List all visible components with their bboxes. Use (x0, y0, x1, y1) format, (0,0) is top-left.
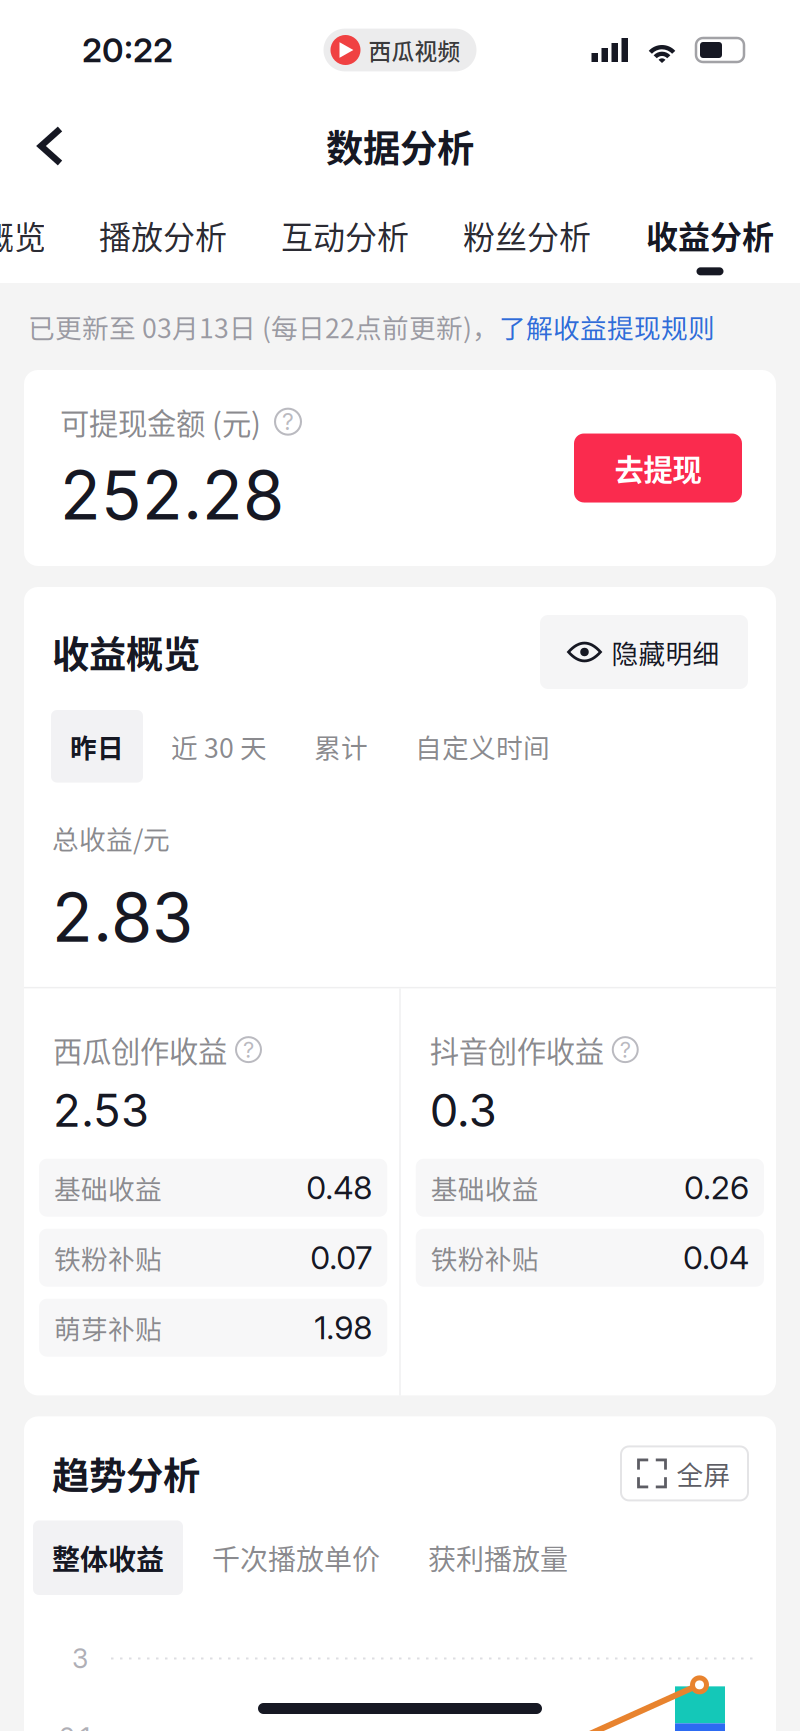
staticText: 基础收益 (54, 1168, 162, 1207)
staticText: 总收益/元 (52, 819, 170, 857)
staticText: 3 (72, 1642, 88, 1675)
staticText: 近 30 天 (171, 727, 267, 766)
staticText: 数据分析 (326, 119, 474, 173)
staticText: 0.3 (430, 1083, 497, 1138)
staticText: 0.04 (683, 1238, 749, 1277)
staticText: ? (620, 1036, 631, 1063)
button[interactable]: 播放分析 (97, 192, 229, 275)
staticText: 252.28 (60, 455, 284, 536)
staticText: ? (243, 1036, 254, 1063)
button[interactable]: 粉丝分析 (461, 192, 593, 275)
staticText: 概览 (0, 212, 46, 258)
button[interactable]: 去提现 (574, 433, 742, 502)
staticText: 可提现金额 (元) (60, 400, 261, 443)
staticText: 获利播放量 (428, 1537, 568, 1578)
button[interactable]: 近 30 天 (152, 710, 286, 783)
staticText: 去提现 (614, 447, 701, 489)
staticText: 2.83 (52, 877, 193, 958)
staticText: 铁粉补贴 (431, 1238, 539, 1277)
staticText: 萌芽补贴 (54, 1308, 162, 1347)
button[interactable]: 整体收益 (33, 1520, 183, 1595)
button[interactable]: 全屏 (621, 1446, 748, 1500)
button[interactable]: 互动分析 (279, 192, 411, 275)
staticText: 千次播放单价 (212, 1537, 380, 1578)
staticText: 粉丝分析 (463, 212, 591, 258)
button[interactable]: Back (0, 105, 94, 187)
staticText: 基础收益 (431, 1168, 539, 1207)
staticText: 西瓜视频 (368, 34, 460, 66)
button[interactable]: 获利播放量 (409, 1520, 587, 1595)
staticText: 已更新至 03月13日 (每日22点前更新)， (28, 307, 499, 346)
staticText: 抖音创作收益 (430, 1028, 604, 1071)
staticText: 20:22 (82, 30, 173, 70)
staticText: 累计 (314, 727, 368, 766)
button[interactable]: 千次播放单价 (193, 1520, 399, 1595)
button[interactable]: 隐藏明细 (540, 615, 748, 689)
staticText: 收益分析 (646, 212, 774, 258)
staticText: ? (282, 408, 294, 435)
staticText: 全屏 (676, 1454, 730, 1493)
staticText: 自定义时间 (415, 727, 550, 766)
staticText: 1.98 (314, 1308, 372, 1347)
staticText: 趋势分析 (52, 1446, 200, 1500)
button[interactable]: 昨日 (51, 710, 143, 783)
staticText: 互动分析 (281, 212, 409, 258)
button[interactable]: 收益分析 (643, 192, 777, 275)
staticText: 0.26 (684, 1168, 749, 1207)
staticText: 2.53 (53, 1083, 149, 1138)
staticText: 2.1 (59, 1721, 90, 1731)
staticText: 西瓜创作收益 (53, 1028, 227, 1071)
staticText: 播放分析 (99, 212, 227, 258)
button[interactable]: 自定义时间 (396, 710, 569, 783)
staticText: 收益概览 (52, 625, 200, 679)
staticText: 昨日 (70, 727, 124, 766)
staticText: 隐藏明细 (611, 633, 719, 671)
button[interactable]: 概览 (0, 192, 47, 275)
staticText: 铁粉补贴 (54, 1238, 162, 1277)
staticText: 了解收益提现规则 (499, 307, 715, 346)
staticText: 0.48 (306, 1168, 372, 1207)
button[interactable]: 累计 (295, 710, 387, 783)
staticText: 0.07 (310, 1238, 372, 1277)
staticText: 整体收益 (52, 1537, 164, 1578)
button[interactable]: 了解收益提现规则 (499, 307, 715, 346)
